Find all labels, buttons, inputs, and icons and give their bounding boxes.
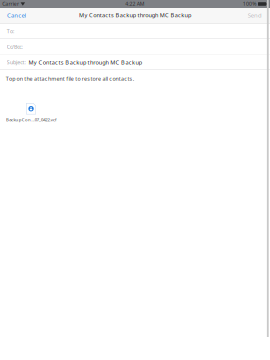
staticText: Cc/Bcc: — [7, 43, 22, 50]
staticText: Cancel — [7, 11, 27, 19]
staticText: BackupCon...07_0422.vcf — [6, 117, 56, 122]
button[interactable]: To: — [0, 23, 270, 39]
staticText: 4:22 AM — [125, 0, 145, 7]
staticText: To: — [7, 28, 14, 35]
button[interactable]: BackupCon...07_0422.vcf — [6, 103, 56, 122]
staticText: My Contacts Backup through MC Backup — [28, 58, 142, 66]
staticText: My Contacts Backup through MC Backup — [79, 11, 191, 19]
button[interactable]: Cancel — [0, 8, 34, 23]
staticText: Top on the attachment file to restore al… — [6, 75, 134, 82]
staticText: 100% — [243, 0, 256, 7]
staticText: Subject: — [7, 59, 25, 66]
button[interactable]: Subject: — [0, 54, 270, 70]
staticText: Send — [248, 11, 262, 19]
button[interactable]: Send — [240, 8, 270, 23]
button[interactable]: Cc/Bcc: — [0, 39, 270, 54]
staticText: Carrier — [2, 0, 19, 7]
